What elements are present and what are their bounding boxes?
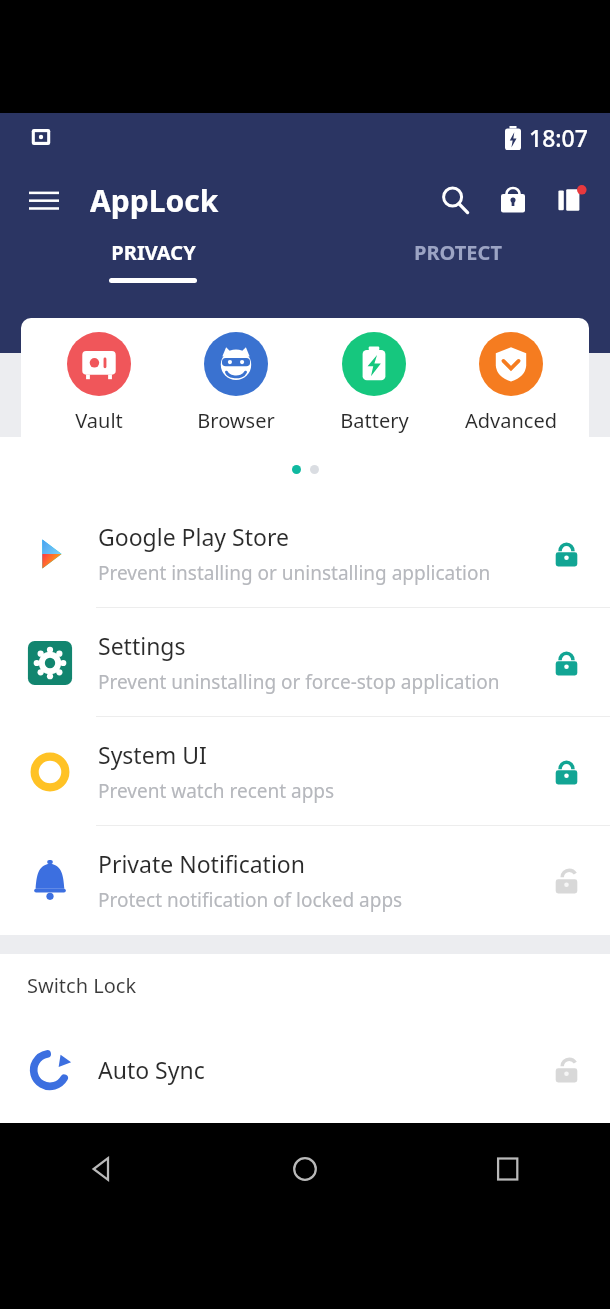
- staticText: Advanced: [465, 407, 557, 434]
- button[interactable]: Google Play Store: [0, 499, 610, 608]
- staticText: Browser: [197, 407, 275, 434]
- staticText: PRIVACY: [111, 239, 196, 266]
- staticText: 18:07: [529, 122, 588, 153]
- button[interactable]: PRIVACY: [0, 239, 305, 283]
- button[interactable]: Recent apps: [406, 1123, 609, 1215]
- staticText: Prevent uninstalling or force-stop appli…: [98, 669, 500, 695]
- button[interactable]: Private Notification: [0, 826, 610, 935]
- button[interactable]: Gift offers: [542, 171, 600, 229]
- button[interactable]: Back: [0, 1123, 203, 1215]
- button[interactable]: Browser: [176, 332, 296, 434]
- button[interactable]: Open navigation menu: [16, 172, 72, 228]
- staticText: Prevent watch recent apps: [98, 778, 335, 804]
- button[interactable]: Battery: [314, 332, 434, 434]
- button[interactable]: System UI: [0, 717, 610, 826]
- button[interactable]: Advanced: [451, 332, 571, 434]
- button[interactable]: Auto Sync: [0, 1016, 610, 1123]
- staticText: PROTECT: [414, 239, 502, 266]
- staticText: Auto Sync: [98, 1054, 205, 1085]
- staticText: Settings: [98, 630, 186, 661]
- button[interactable]: PROTECT: [305, 239, 610, 283]
- button[interactable]: Home: [203, 1123, 406, 1215]
- button[interactable]: Vault: [39, 332, 159, 434]
- staticText: Vault: [75, 407, 123, 434]
- staticText: Protect notification of locked apps: [98, 887, 403, 913]
- staticText: Switch Lock: [27, 972, 137, 999]
- staticText: Battery: [340, 407, 409, 434]
- staticText: Google Play Store: [98, 521, 289, 552]
- button[interactable]: Store: [484, 171, 542, 229]
- staticText: Private Notification: [98, 848, 305, 879]
- button[interactable]: Settings: [0, 608, 610, 717]
- staticText: System UI: [98, 739, 207, 770]
- staticText: Prevent installing or uninstalling appli…: [98, 560, 491, 586]
- button[interactable]: Search: [426, 171, 484, 229]
- staticText: AppLock: [90, 180, 219, 221]
